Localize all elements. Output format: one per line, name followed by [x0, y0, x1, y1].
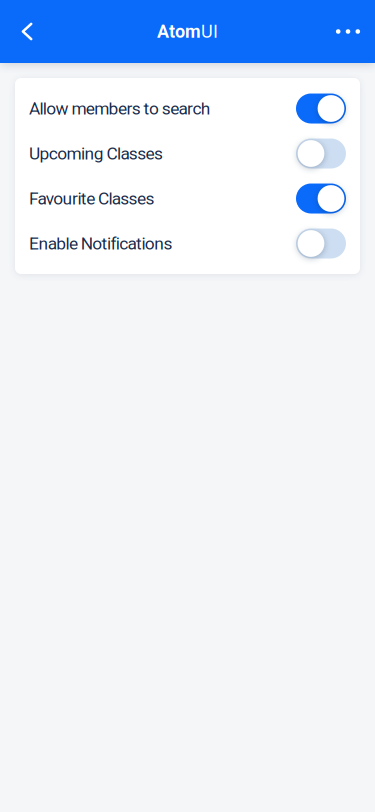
staticText: Enable Notifications	[29, 233, 173, 254]
staticText: Atom	[157, 21, 201, 42]
button[interactable]: Allow members to search	[15, 86, 360, 131]
button[interactable]: Upcoming Classes	[15, 131, 360, 176]
staticText: Allow members to search	[29, 98, 211, 119]
button[interactable]: Enable Notifications	[15, 221, 360, 266]
button[interactable]: Favourite Classes	[15, 176, 360, 221]
staticText: Favourite Classes	[29, 188, 154, 209]
staticText: Upcoming Classes	[29, 143, 163, 164]
staticText: UI	[201, 21, 218, 42]
button[interactable]: Back	[0, 0, 55, 63]
button[interactable]: More options	[320, 0, 375, 63]
